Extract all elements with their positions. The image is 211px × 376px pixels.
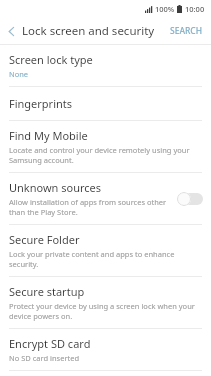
staticText: Secure Folder (9, 232, 80, 247)
staticText: Find My Mobile (9, 128, 88, 143)
button[interactable]: Screen lock type (0, 45, 211, 86)
button[interactable]: Unknown sources toggle (177, 192, 203, 206)
staticText: Protect your device by using a screen lo… (9, 301, 203, 321)
staticText: 100% (155, 4, 175, 14)
button[interactable]: Secure startup (0, 277, 211, 328)
staticText: Fingerprints (9, 96, 73, 111)
staticText: Allow installation of apps from sources … (9, 197, 171, 217)
button[interactable]: Navigate up (0, 18, 22, 44)
staticText: SEARCH (170, 25, 203, 37)
button[interactable]: Secure Folder (0, 225, 211, 276)
staticText: None (9, 69, 29, 79)
button[interactable]: Encrypt SD card (0, 329, 211, 370)
button[interactable]: SEARCH (162, 20, 211, 42)
staticText: Screen lock type (9, 52, 93, 67)
staticText: Unknown sources (9, 180, 102, 195)
button[interactable]: Unknown sources (0, 173, 211, 224)
staticText: No SD card inserted (9, 353, 80, 363)
staticText: Locate and control your device remotely … (9, 145, 203, 165)
staticText: Lock screen and security (22, 23, 155, 39)
staticText: Secure startup (9, 284, 85, 299)
staticText: Encrypt SD card (9, 336, 91, 351)
button[interactable]: Fingerprints (0, 87, 211, 120)
button[interactable]: Find My Mobile (0, 121, 211, 172)
staticText: Lock your private content and apps to en… (9, 249, 203, 269)
staticText: 10:00 (185, 4, 205, 14)
